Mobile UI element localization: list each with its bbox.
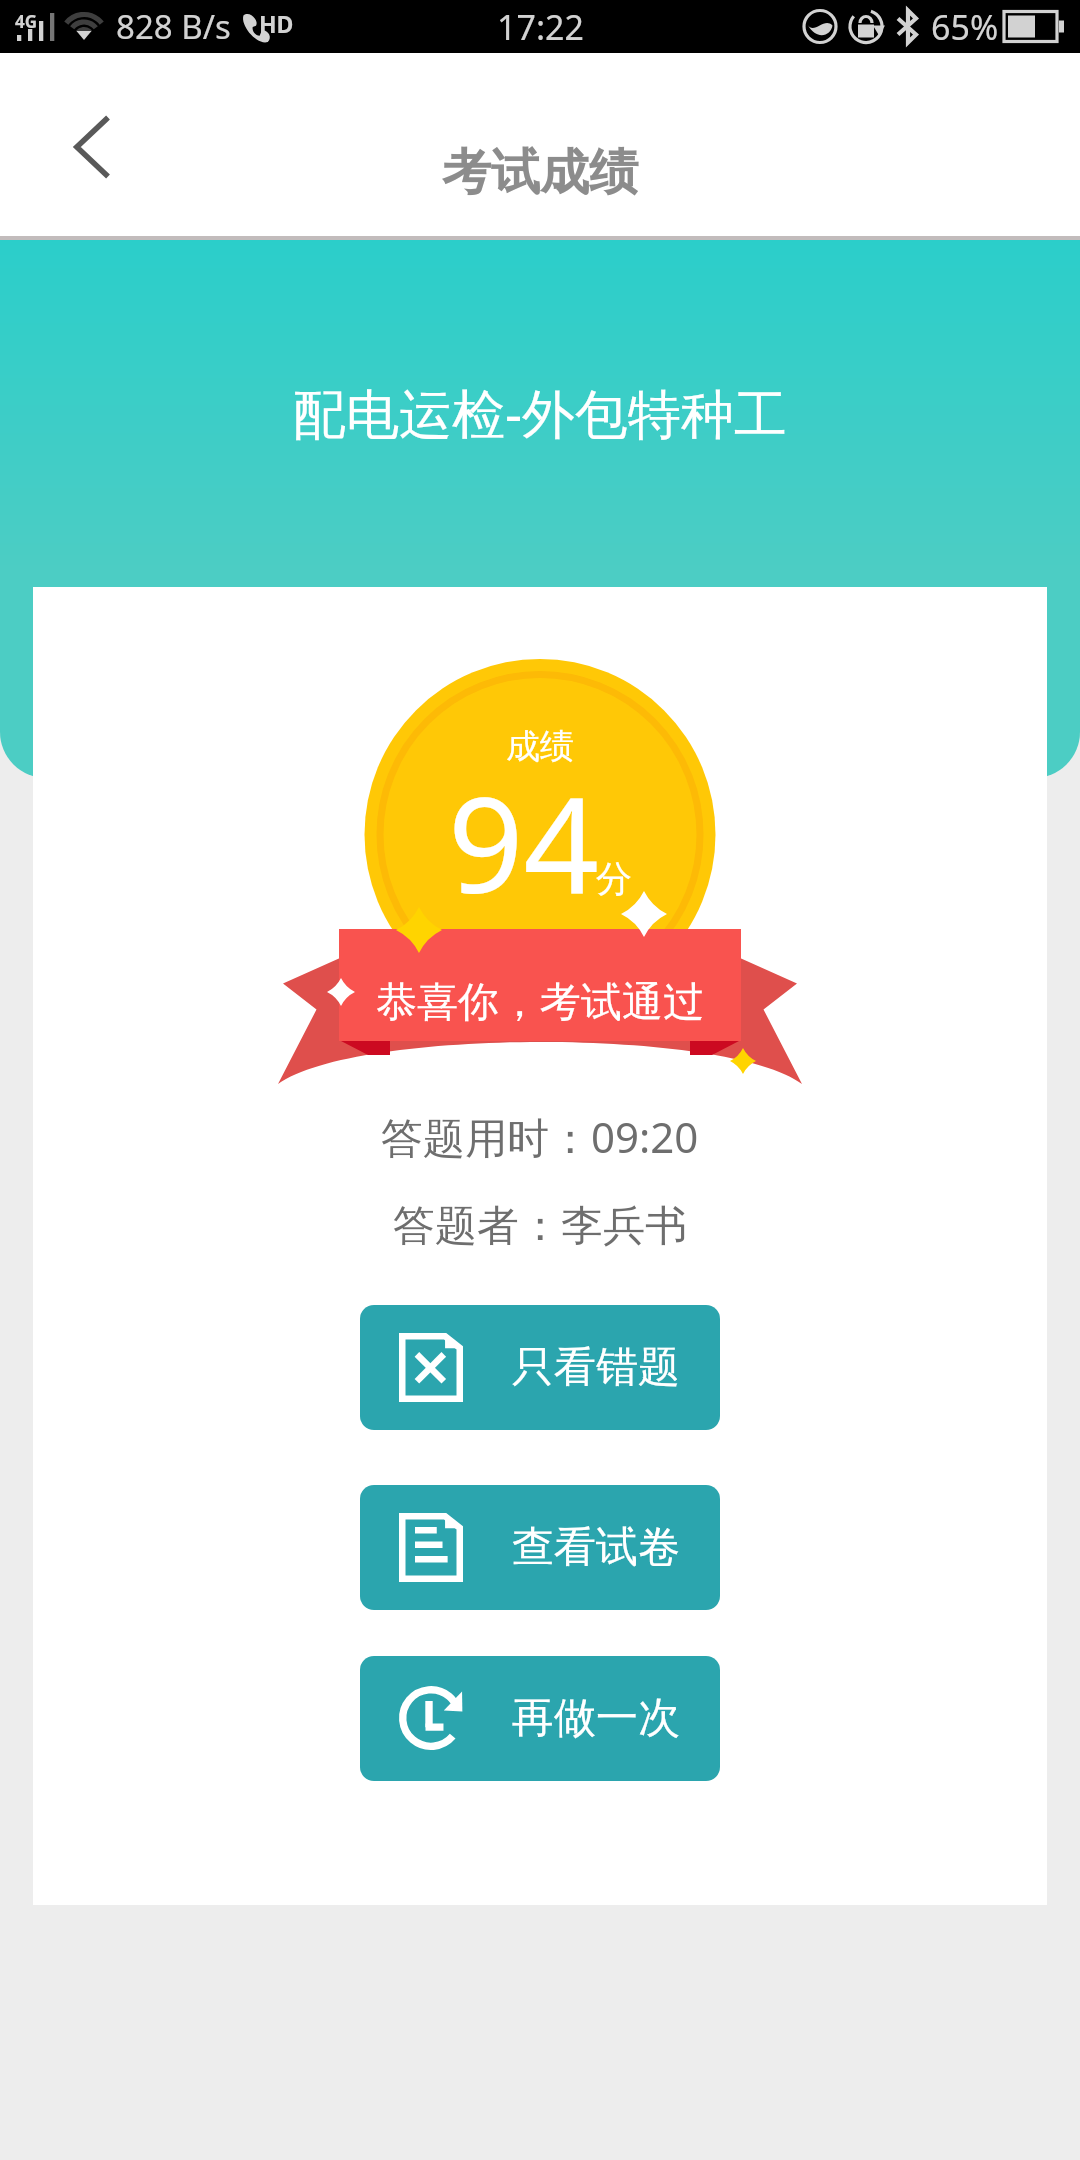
button[interactable]: Only wrong questions [360,1305,720,1430]
other: Only wrong questions [399,1333,463,1402]
staticText: 答题用时：09:20 [381,1108,699,1165]
staticText: 答题者：李兵书 [393,1200,687,1253]
staticText: 恭喜你，考试通过 [376,977,704,1029]
staticText: 17:22 [497,4,584,50]
button[interactable]: Back [42,107,122,187]
staticText: 考试成绩 [442,142,638,204]
button[interactable]: View paper [360,1485,720,1610]
staticText: 4G [15,10,38,33]
other: View paper [399,1513,463,1582]
staticText: 828 B/s [116,4,231,49]
staticText: 成绩 [506,725,574,768]
staticText: 65% [931,4,999,50]
other: Retry [399,1684,463,1753]
staticText: 再做一次 [512,1692,680,1745]
staticText: HD [259,8,294,39]
button[interactable]: Retry [360,1656,720,1781]
staticText: 只看错题 [512,1341,680,1394]
staticText: 配电运检-外包特种工 [293,376,788,448]
staticText: 分 [596,856,632,901]
staticText: 94 [448,752,600,932]
staticText: 查看试卷 [512,1521,680,1574]
